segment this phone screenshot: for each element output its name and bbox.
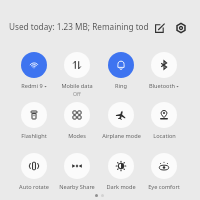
button[interactable]: Location	[141, 102, 187, 140]
button[interactable]: Ring	[98, 52, 144, 90]
staticText: Airplane mode	[102, 132, 141, 140]
staticText: Used today: 1.23 MB; Remaining tod	[9, 21, 149, 32]
staticText: Bluetooth	[149, 82, 175, 90]
button[interactable]: Mobile data	[54, 52, 100, 97]
button[interactable]: Bluetooth	[141, 52, 187, 90]
staticText: Mobile data	[61, 82, 93, 90]
button[interactable]: Settings	[172, 19, 189, 36]
button[interactable]: Nearby Share	[54, 153, 100, 191]
staticText: Location	[153, 132, 176, 140]
button[interactable]: Dark mode	[98, 153, 144, 191]
staticText: Eye comfort	[148, 183, 180, 191]
staticText: Redmi 9	[21, 82, 43, 90]
staticText: Flashlight	[21, 132, 47, 140]
button[interactable]: Auto rotate	[11, 153, 57, 191]
button[interactable]: Airplane mode	[98, 102, 144, 140]
staticText: Auto rotate	[19, 183, 49, 191]
staticText: Dark mode	[106, 183, 136, 191]
staticText: Ring	[115, 82, 127, 90]
button[interactable]: Flashlight	[11, 102, 57, 140]
staticText: Nearby Share	[59, 183, 95, 191]
staticText: Modes	[68, 132, 86, 140]
button[interactable]: Modes	[54, 102, 100, 140]
staticText: Off	[73, 90, 81, 97]
button[interactable]: Eye comfort	[141, 153, 187, 191]
button[interactable]: Redmi 9	[11, 52, 57, 90]
button[interactable]: Edit tiles	[151, 19, 168, 36]
